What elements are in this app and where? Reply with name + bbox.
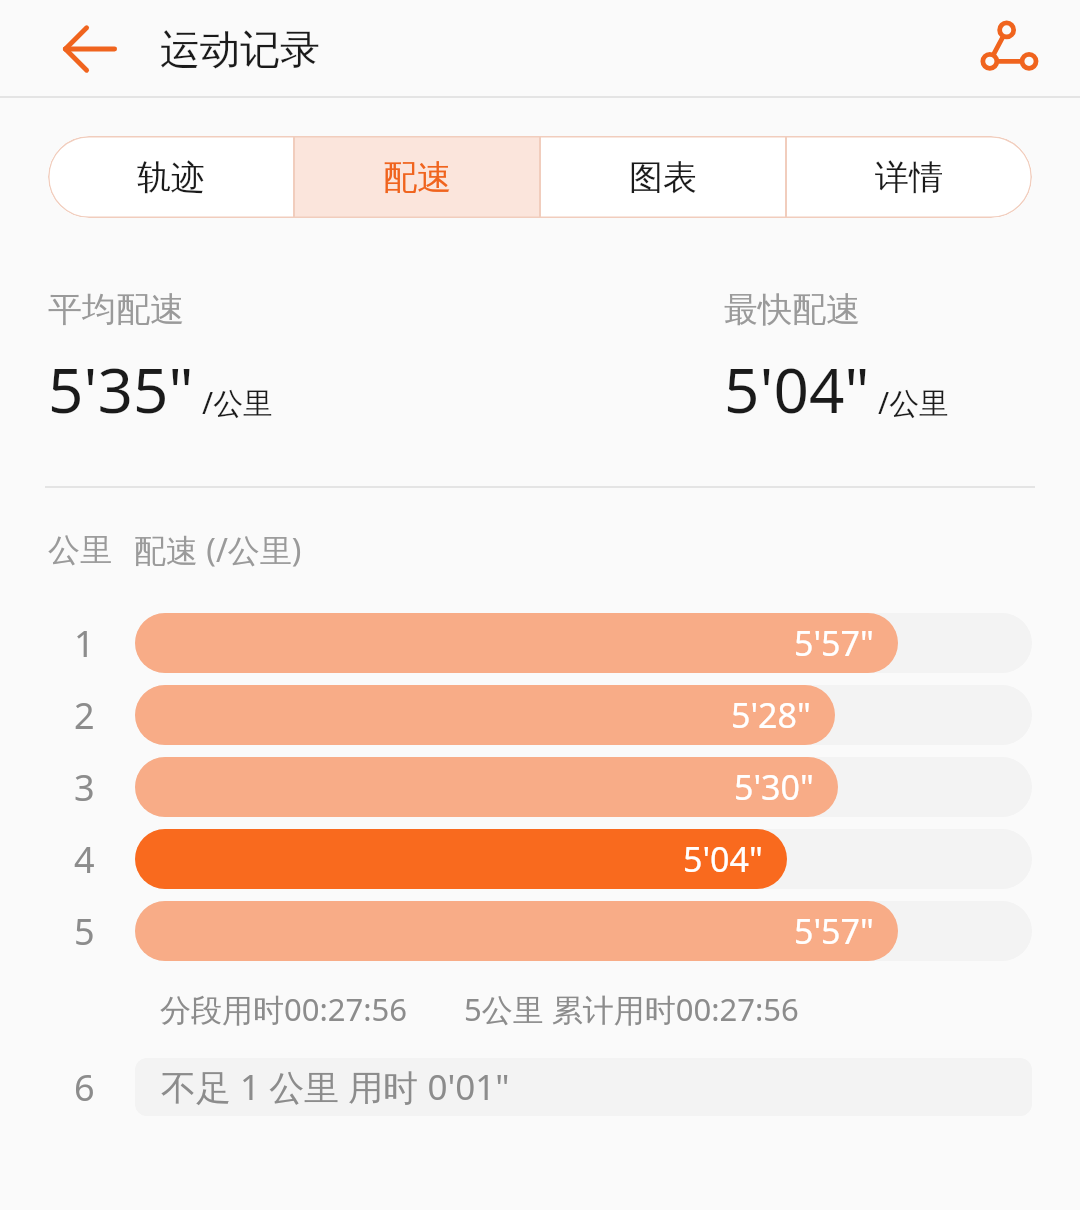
staticText: 5'57" <box>794 908 874 954</box>
staticText: /公里 <box>202 382 274 423</box>
button[interactable] <box>135 613 1032 673</box>
staticText: 3 <box>74 763 95 812</box>
staticText: 轨迹 <box>137 156 205 199</box>
staticText: 5'04" <box>683 836 763 882</box>
button[interactable] <box>135 757 1032 817</box>
button[interactable]: 配速 <box>294 136 540 218</box>
staticText: 5'30" <box>734 764 814 810</box>
staticText: 详情 <box>875 156 943 199</box>
button[interactable]: 图表 <box>540 136 786 218</box>
staticText: 5'28" <box>731 692 811 738</box>
button[interactable]: 轨迹 <box>48 136 294 218</box>
button[interactable]: 详情 <box>786 136 1032 218</box>
staticText: 图表 <box>629 156 697 199</box>
staticText: 最快配速 <box>724 288 860 331</box>
staticText: 配速 <box>383 156 451 199</box>
staticText: 5'04" <box>724 347 870 431</box>
staticText: 4 <box>74 835 95 884</box>
button[interactable] <box>135 901 1032 961</box>
button[interactable] <box>135 829 1032 889</box>
staticText: 分段用时00:27:56 <box>160 988 408 1030</box>
staticText: 平均配速 <box>48 288 184 331</box>
staticText: 5公里 累计用时00:27:56 <box>464 988 799 1030</box>
staticText: /公里 <box>878 382 950 423</box>
button[interactable]: Share <box>960 0 1060 97</box>
staticText: 5'35" <box>48 347 194 431</box>
button[interactable]: Back <box>36 0 144 97</box>
button[interactable]: 不足 1 公里 用时 0'01" <box>135 1058 1032 1116</box>
staticText: 5 <box>74 907 95 956</box>
button[interactable] <box>135 685 1032 745</box>
staticText: 2 <box>74 691 95 740</box>
staticText: 1 <box>74 619 95 668</box>
staticText: 公里 <box>48 530 112 570</box>
staticText: 不足 1 公里 用时 0'01" <box>161 1063 510 1111</box>
staticText: 配速 (/公里) <box>134 528 302 572</box>
staticText: 运动记录 <box>160 24 320 74</box>
staticText: 6 <box>74 1063 95 1112</box>
staticText: 5'57" <box>794 620 874 666</box>
